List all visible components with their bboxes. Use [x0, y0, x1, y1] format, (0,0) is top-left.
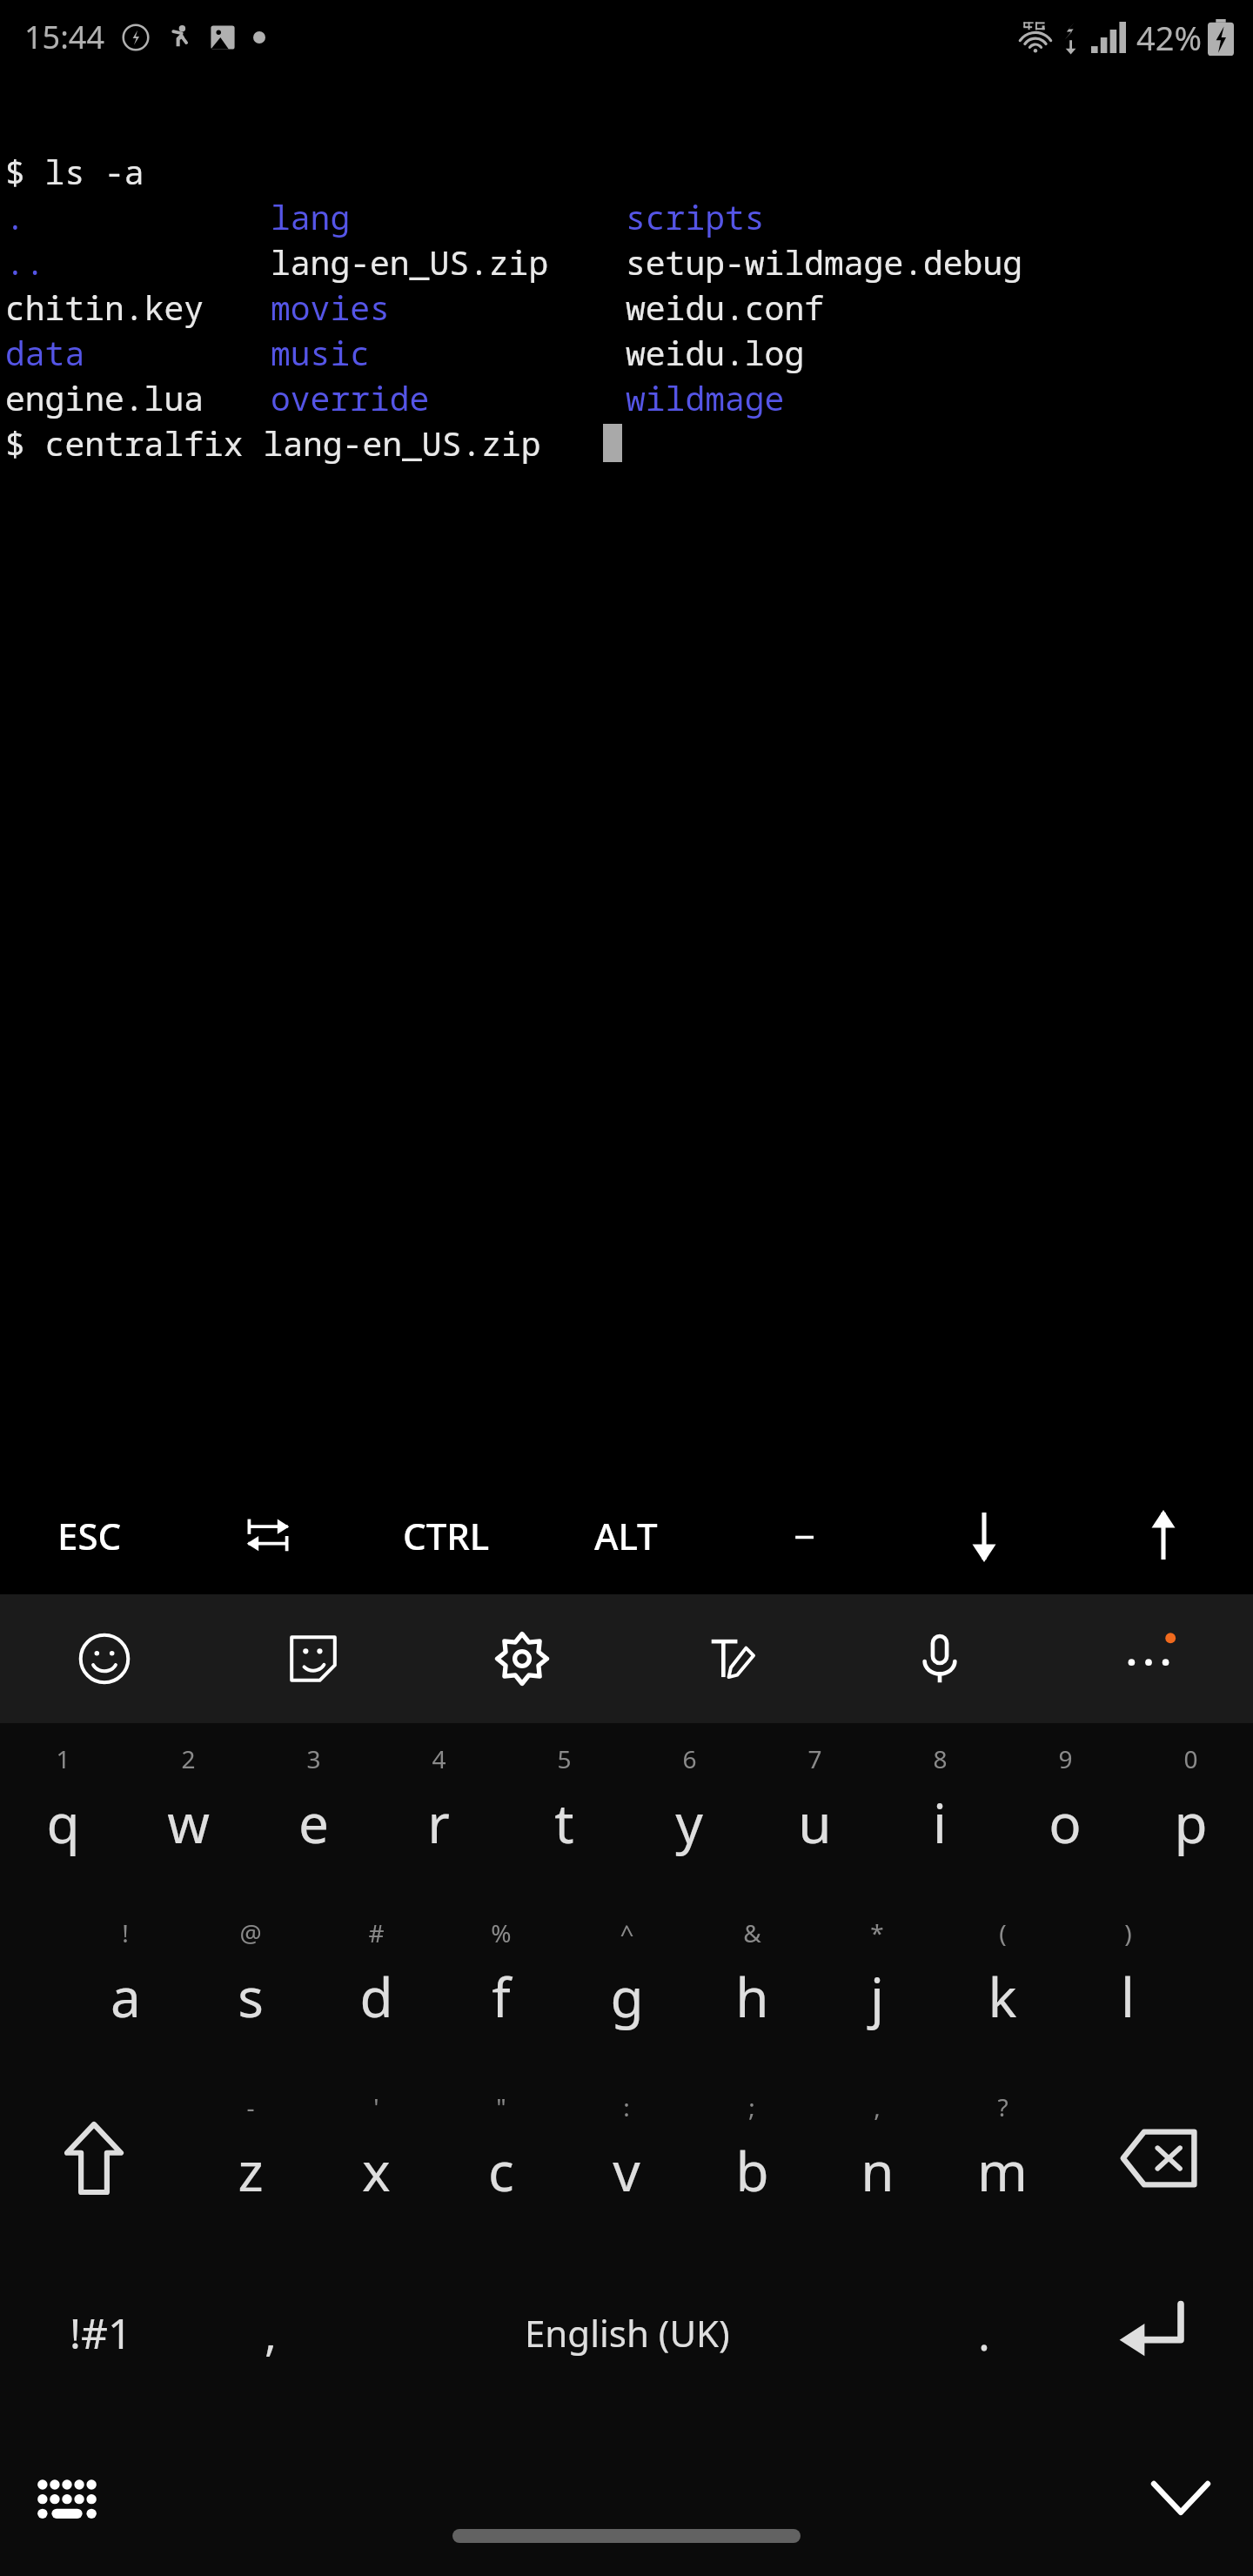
button[interactable]: 6 — [626, 1723, 752, 1897]
staticText: 2 — [181, 1742, 196, 1775]
staticText: c — [488, 2134, 514, 2207]
button[interactable]: 5 — [501, 1723, 626, 1897]
button[interactable]: Arrow up — [1074, 1477, 1253, 1594]
button[interactable]: 2 — [125, 1723, 251, 1897]
staticText: data — [5, 330, 85, 375]
staticText: ) — [1124, 1916, 1132, 1949]
staticText: . — [978, 2302, 990, 2364]
button[interactable]: @ — [188, 1897, 313, 2071]
staticText: o — [1049, 1786, 1082, 1859]
button[interactable]: ! — [63, 1897, 188, 2071]
staticText: ! — [122, 1916, 129, 1949]
staticText: . — [5, 194, 25, 239]
button[interactable]: !#1 — [0, 2245, 201, 2419]
button[interactable]: Emoji — [0, 1594, 209, 1723]
button[interactable]: Shift — [0, 2071, 188, 2245]
button[interactable]: Arrow down — [895, 1477, 1074, 1594]
button[interactable]: 8 — [877, 1723, 1002, 1897]
button[interactable]: , — [814, 2071, 940, 2245]
staticText: music — [271, 330, 371, 375]
button[interactable]: Enter — [1053, 2245, 1253, 2419]
button[interactable]: − — [715, 1477, 895, 1594]
staticText: 42% — [1136, 15, 1203, 60]
button[interactable]: * — [814, 1897, 940, 2071]
staticText: $ centralfix lang-en_US.zip — [5, 420, 541, 466]
button[interactable]: Hide keyboard layout — [19, 2450, 115, 2546]
staticText: wildmage — [626, 375, 785, 420]
button[interactable]: More options — [1044, 1594, 1253, 1723]
staticText: w — [167, 1786, 210, 1859]
button[interactable]: Stickers — [209, 1594, 418, 1723]
button[interactable]: # — [313, 1897, 439, 2071]
staticText: z — [238, 2134, 264, 2207]
button[interactable]: 0 — [1128, 1723, 1253, 1897]
staticText: k — [988, 1960, 1017, 2033]
staticText: # — [368, 1916, 385, 1949]
staticText: h — [735, 1960, 769, 2033]
button[interactable]: English (UK) — [339, 2245, 915, 2419]
staticText: ? — [997, 2090, 1008, 2123]
staticText: * — [870, 1916, 884, 1949]
button[interactable]: , — [201, 2245, 339, 2419]
button[interactable]: 9 — [1002, 1723, 1128, 1897]
staticText: j — [870, 1960, 884, 2033]
staticText: !#1 — [70, 2304, 132, 2361]
staticText: 9 — [1058, 1742, 1073, 1775]
button[interactable]: ESC — [0, 1477, 178, 1594]
staticText: a — [111, 1960, 141, 2033]
staticText: setup-wildmage.debug — [626, 239, 1023, 285]
button[interactable]: ' — [313, 2071, 439, 2245]
button[interactable]: - — [188, 2071, 313, 2245]
staticText: − — [794, 1510, 816, 1562]
button[interactable]: Tab — [178, 1477, 357, 1594]
button[interactable]: " — [439, 2071, 564, 2245]
staticText: i — [933, 1786, 947, 1859]
staticText: q — [46, 1786, 80, 1859]
button[interactable]: Handwriting — [626, 1594, 835, 1723]
button[interactable]: ) — [1065, 1897, 1190, 2071]
staticText: ; — [748, 2090, 755, 2123]
button[interactable]: 1 — [0, 1723, 125, 1897]
staticText: 8 — [933, 1742, 948, 1775]
staticText: " — [496, 2090, 506, 2123]
button[interactable]: 4 — [376, 1723, 501, 1897]
button[interactable]: ALT — [536, 1477, 715, 1594]
button[interactable]: ; — [689, 2071, 814, 2245]
staticText: l — [1121, 1960, 1135, 2033]
button[interactable]: CTRL — [357, 1477, 536, 1594]
staticText: chitin.key — [5, 285, 204, 330]
button[interactable]: . — [915, 2245, 1053, 2419]
staticText: lang — [271, 194, 351, 239]
staticText: u — [798, 1786, 832, 1859]
button[interactable]: 3 — [251, 1723, 376, 1897]
button[interactable]: % — [439, 1897, 564, 2071]
staticText: @ — [239, 1916, 262, 1949]
button[interactable]: ? — [940, 2071, 1065, 2245]
staticText: p — [1174, 1786, 1208, 1859]
button[interactable]: Backspace — [1065, 2071, 1253, 2245]
staticText: CTRL — [403, 1511, 490, 1560]
staticText: y — [675, 1786, 703, 1859]
button[interactable]: Voice input — [835, 1594, 1044, 1723]
staticText: ' — [373, 2090, 379, 2123]
button[interactable]: ( — [940, 1897, 1065, 2071]
staticText: n — [861, 2134, 895, 2207]
staticText: movies — [271, 285, 390, 330]
button[interactable]: & — [689, 1897, 814, 2071]
staticText: 1 — [56, 1742, 70, 1775]
staticText: override — [271, 375, 430, 420]
button[interactable]: 7 — [752, 1723, 877, 1897]
staticText: ALT — [594, 1511, 658, 1560]
staticText: weidu.log — [626, 330, 805, 375]
button[interactable]: Settings — [418, 1594, 626, 1723]
staticText: 5 — [557, 1742, 572, 1775]
staticText: % — [491, 1916, 512, 1949]
button[interactable]: Hide keyboard — [1133, 2450, 1229, 2546]
staticText: m — [977, 2134, 1028, 2207]
button[interactable]: $ ls -a — [0, 74, 1253, 1477]
staticText: ESC — [57, 1511, 122, 1560]
button[interactable]: : — [564, 2071, 689, 2245]
button[interactable]: ^ — [564, 1897, 689, 2071]
staticText: .. — [5, 239, 45, 285]
staticText: : — [623, 2090, 630, 2123]
